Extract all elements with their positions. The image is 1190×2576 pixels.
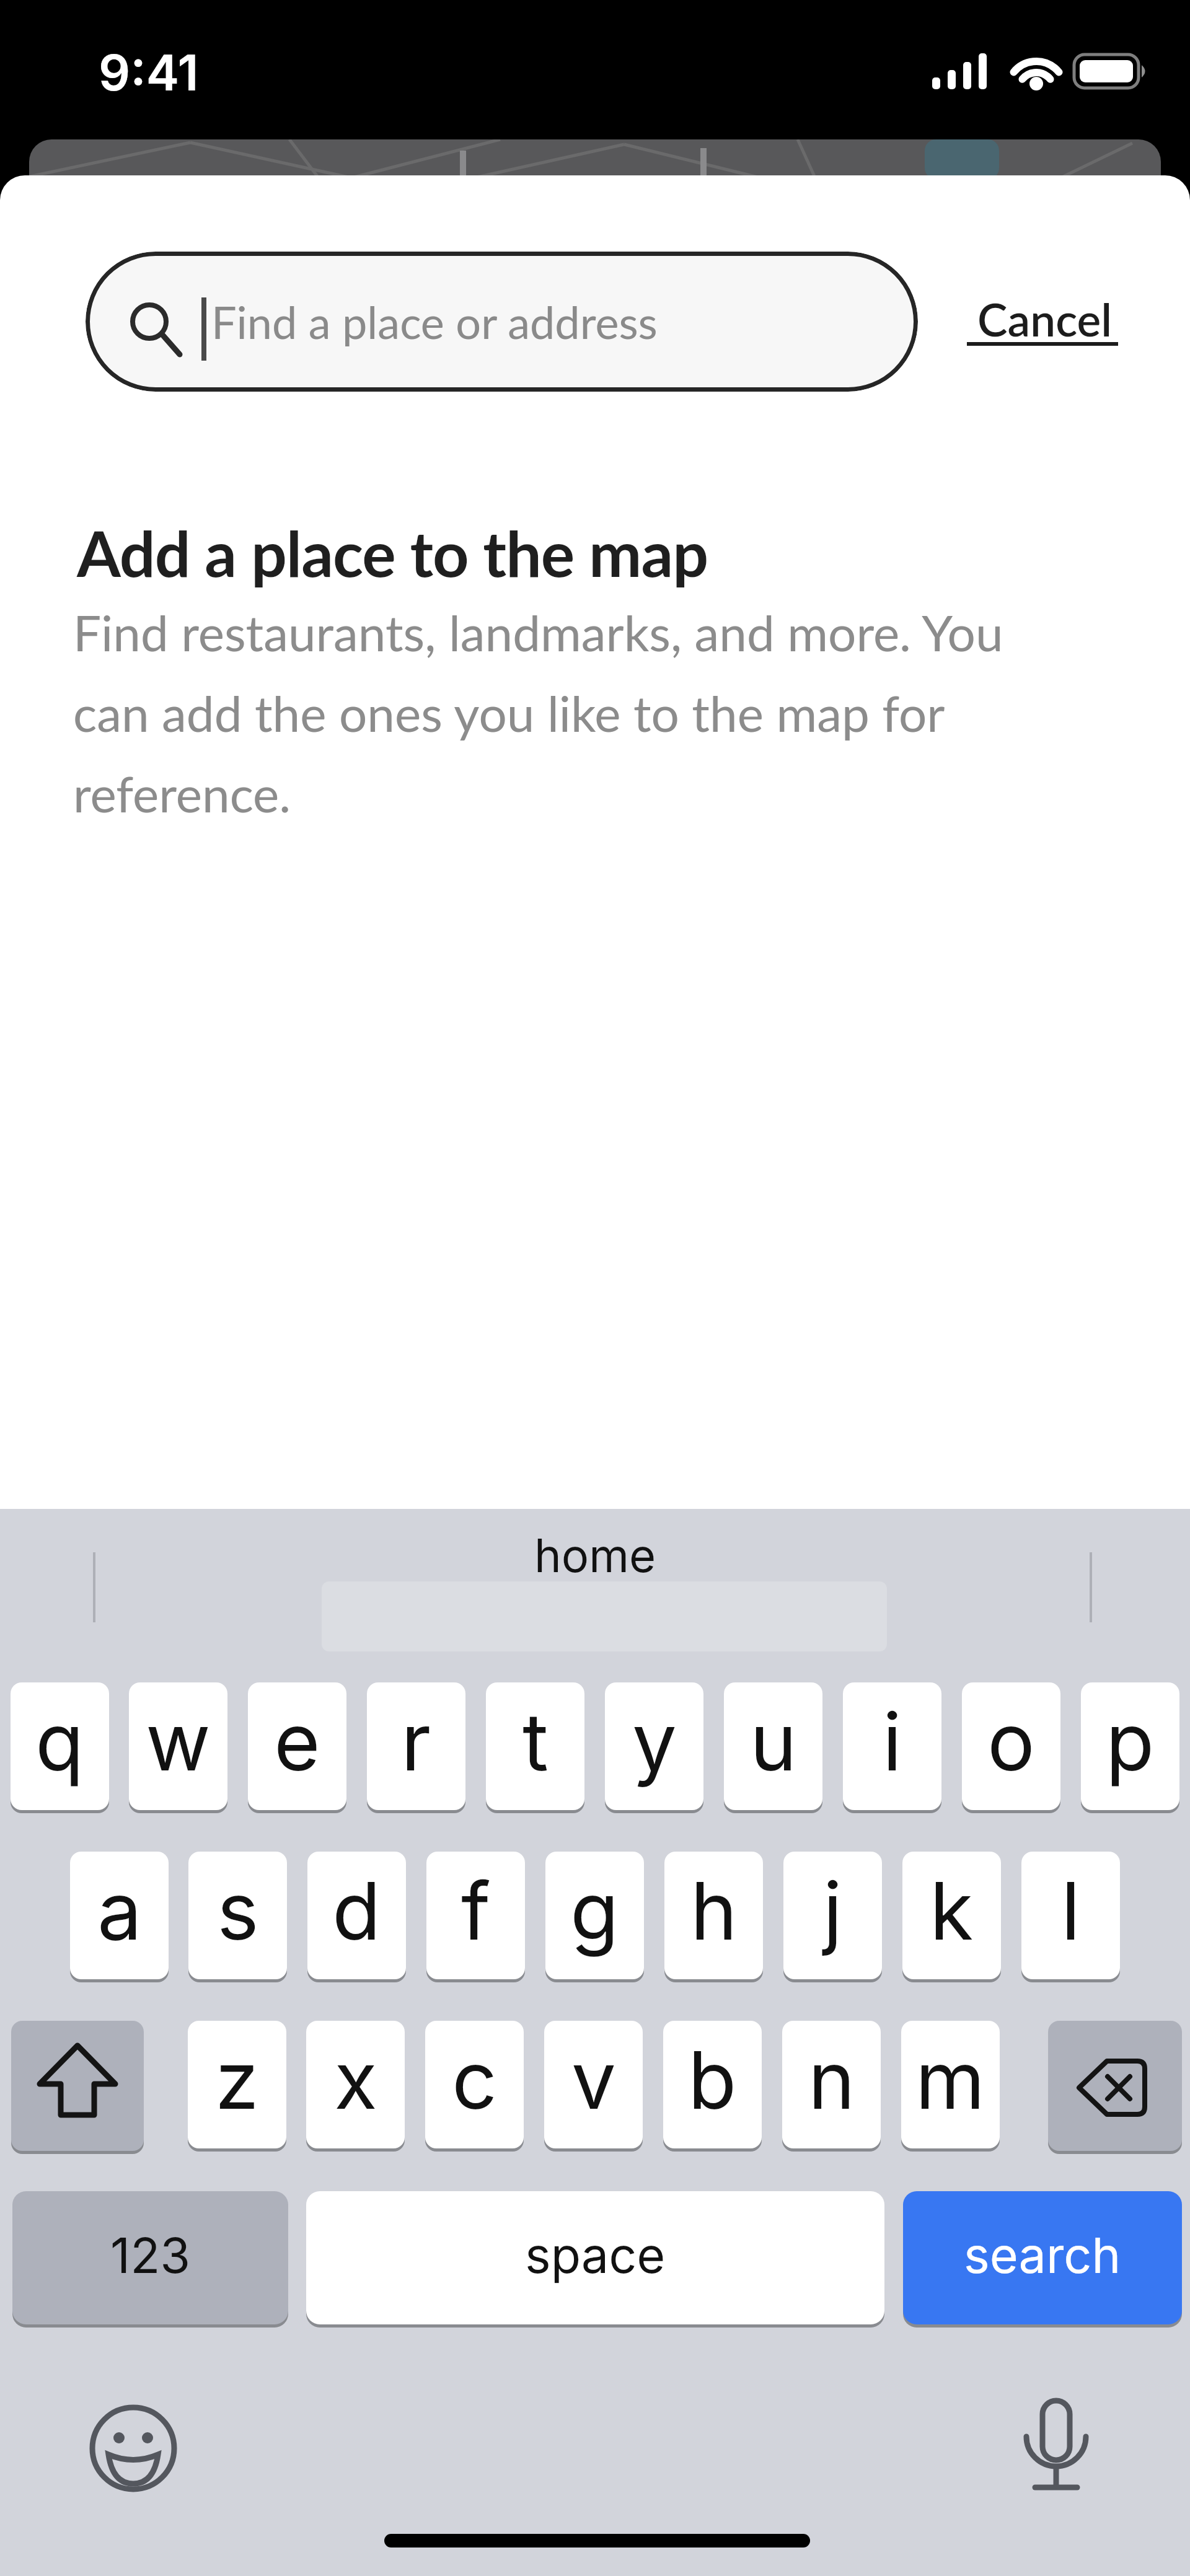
button[interactable]: x bbox=[306, 2021, 405, 2152]
staticText: home bbox=[534, 1528, 656, 1583]
staticText: Cancel bbox=[977, 292, 1112, 346]
staticText: o bbox=[987, 1694, 1035, 1790]
button[interactable]: search bbox=[903, 2191, 1182, 2328]
button[interactable]: d bbox=[307, 1852, 406, 1982]
staticText: u bbox=[750, 1694, 797, 1790]
staticText: c bbox=[452, 2032, 498, 2128]
staticText: v bbox=[571, 2032, 616, 2128]
button[interactable] bbox=[81, 2396, 186, 2501]
button[interactable]: b bbox=[663, 2021, 762, 2152]
button[interactable]: p bbox=[1081, 1682, 1179, 1813]
button[interactable]: Cancel bbox=[958, 276, 1131, 363]
button[interactable]: a bbox=[70, 1852, 169, 1982]
button[interactable]: q bbox=[11, 1682, 109, 1813]
staticText: d bbox=[332, 1863, 381, 1959]
staticText: j bbox=[823, 1863, 842, 1959]
button[interactable]: s bbox=[188, 1852, 287, 1982]
staticText: r bbox=[401, 1694, 431, 1790]
staticText: 123 bbox=[110, 2225, 191, 2285]
staticText: search bbox=[964, 2225, 1121, 2285]
staticText: Add a place to the map bbox=[77, 514, 708, 590]
button[interactable] bbox=[1048, 2021, 1182, 2154]
button[interactable]: o bbox=[962, 1682, 1060, 1813]
staticText: f bbox=[461, 1863, 491, 1959]
staticText: m bbox=[915, 2032, 985, 2128]
button[interactable]: 123 bbox=[12, 2191, 288, 2328]
button[interactable]: z bbox=[188, 2021, 286, 2152]
staticText: h bbox=[690, 1863, 738, 1959]
staticText: a bbox=[97, 1863, 142, 1959]
staticText: Find restaurants, landmarks, and more. Y… bbox=[73, 602, 1003, 823]
button[interactable]: h bbox=[664, 1852, 763, 1982]
button[interactable]: space bbox=[306, 2191, 884, 2328]
staticText: k bbox=[930, 1863, 974, 1959]
button[interactable]: e bbox=[248, 1682, 346, 1813]
staticText: Find a place or address bbox=[211, 295, 658, 348]
staticText: q bbox=[35, 1694, 84, 1790]
button[interactable]: c bbox=[425, 2021, 524, 2152]
button[interactable]: g bbox=[545, 1852, 644, 1982]
button[interactable]: n bbox=[782, 2021, 881, 2152]
button[interactable]: v bbox=[544, 2021, 643, 2152]
staticText: p bbox=[1106, 1694, 1155, 1790]
button[interactable]: y bbox=[605, 1682, 703, 1813]
staticText: w bbox=[146, 1694, 211, 1790]
button[interactable]: w bbox=[129, 1682, 227, 1813]
button[interactable]: t bbox=[486, 1682, 584, 1813]
staticText: y bbox=[632, 1694, 677, 1790]
button[interactable]: k bbox=[902, 1852, 1001, 1982]
staticText: space bbox=[525, 2225, 666, 2285]
button[interactable]: j bbox=[783, 1852, 882, 1982]
button[interactable]: f bbox=[426, 1852, 525, 1982]
button[interactable] bbox=[1010, 2386, 1103, 2503]
staticText: x bbox=[334, 2032, 377, 2128]
button[interactable]: l bbox=[1021, 1852, 1120, 1982]
button[interactable]: r bbox=[367, 1682, 465, 1813]
button[interactable]: u bbox=[724, 1682, 822, 1813]
staticText: n bbox=[808, 2032, 855, 2128]
staticText: 9:41 bbox=[99, 42, 199, 102]
staticText: i bbox=[883, 1694, 902, 1790]
button[interactable]: Find a place or address bbox=[86, 252, 918, 392]
button[interactable]: i bbox=[843, 1682, 941, 1813]
staticText: s bbox=[217, 1863, 259, 1959]
button[interactable] bbox=[11, 2021, 144, 2154]
staticText: g bbox=[570, 1863, 619, 1959]
staticText: l bbox=[1061, 1863, 1080, 1959]
staticText: e bbox=[274, 1694, 320, 1790]
staticText: z bbox=[215, 2032, 259, 2128]
button[interactable]: m bbox=[901, 2021, 1000, 2152]
staticText: t bbox=[522, 1694, 549, 1790]
staticText: b bbox=[688, 2032, 737, 2128]
